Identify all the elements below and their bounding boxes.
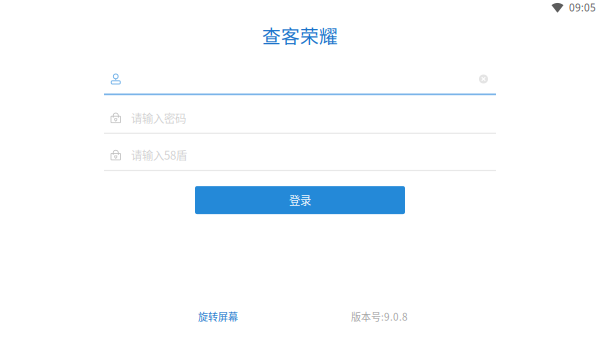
staticText: 请输入密码 (131, 109, 186, 126)
button[interactable]: 请输入58盾 (104, 150, 496, 160)
staticText: 旋转屏幕 (198, 309, 238, 324)
button[interactable]: Account (104, 74, 479, 84)
staticText: 登录 (289, 192, 311, 208)
staticText: 版本号:9.0.8 (351, 309, 408, 324)
staticText: 09:05 (569, 1, 596, 14)
button[interactable]: 请输入密码 (104, 113, 496, 123)
button[interactable]: 登录 (195, 186, 405, 214)
staticText: 查客荣耀 (262, 21, 338, 48)
staticText: 请输入58盾 (131, 147, 187, 163)
button[interactable]: 旋转屏幕 (198, 309, 238, 324)
button[interactable]: Clear text (479, 74, 488, 83)
